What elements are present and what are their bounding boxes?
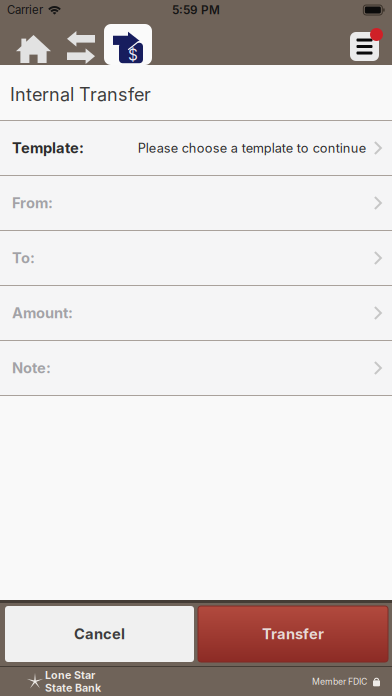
staticText: Amount:	[12, 304, 73, 322]
staticText: From:	[12, 194, 53, 212]
staticText: Internal Transfer	[10, 84, 151, 105]
staticText: $	[128, 46, 138, 64]
button[interactable]: Menu	[350, 32, 392, 65]
staticText: Please choose a template to continue	[138, 140, 366, 156]
staticText: Transfer	[262, 625, 324, 643]
button[interactable]: Note:	[0, 341, 392, 396]
staticText: Note:	[12, 359, 51, 377]
staticText: Template:	[12, 139, 84, 157]
button[interactable]: To:	[0, 231, 392, 286]
staticText: State Bank	[45, 681, 101, 694]
button[interactable]: Transfers	[64, 20, 104, 65]
staticText: 5:59 PM	[172, 3, 220, 17]
staticText: Carrier	[7, 3, 43, 17]
button[interactable]: From:	[0, 176, 392, 231]
staticText: To:	[12, 249, 35, 267]
button[interactable]: Cancel	[5, 606, 194, 662]
staticText: Member FDIC	[312, 676, 367, 687]
staticText: Lone Star	[45, 669, 95, 681]
button[interactable]: Amount:	[0, 286, 392, 341]
staticText: Cancel	[74, 625, 125, 643]
button[interactable]: Transfer	[198, 606, 388, 662]
button[interactable]: Internal Transfer	[104, 24, 152, 65]
button[interactable]: Home	[13, 20, 64, 65]
button[interactable]: Template:	[0, 121, 392, 176]
